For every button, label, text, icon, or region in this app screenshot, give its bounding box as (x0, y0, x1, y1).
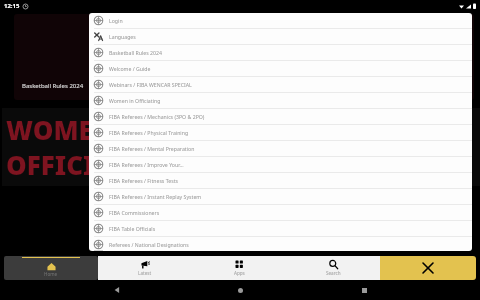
staticText: Basketball Rules 2024 (22, 82, 84, 90)
staticText: Basketball Rules 2024 (109, 49, 162, 56)
staticText: Search (326, 270, 341, 276)
button[interactable]: WOMEN (2, 108, 480, 186)
staticText: FIBA Referees / Physical Training (109, 129, 189, 136)
button[interactable]: Close (380, 256, 476, 280)
staticText: 12:15 (4, 2, 20, 10)
button[interactable]: FIBA Referees / Physical Training (89, 125, 472, 140)
staticText: Login (109, 17, 123, 24)
staticText: FIBA Table Officials (109, 225, 156, 232)
button[interactable]: FIBA Commissioners (89, 205, 472, 220)
button[interactable]: Referees / National Designations (89, 237, 472, 251)
staticText: Languages (109, 33, 136, 40)
button[interactable]: Login (89, 13, 472, 28)
button[interactable]: Languages (89, 29, 472, 44)
staticText: BASK (384, 55, 438, 82)
button[interactable]: Women in Officiating (89, 93, 472, 108)
button[interactable]: FIBA Referees / Improve Your... (89, 157, 472, 172)
button[interactable]: Home (233, 283, 247, 297)
button[interactable]: Basketball Rules 2024 (89, 45, 472, 60)
button[interactable]: O (14, 14, 474, 100)
button[interactable]: Webinars / FIBA WENCAR SPECIAL (89, 77, 472, 92)
staticText: OFFICI (6, 147, 95, 182)
staticText: FIBA Referees / Mechanics (3PO & 2PO) (109, 113, 205, 120)
button[interactable]: Latest (98, 256, 192, 280)
button[interactable]: FIBA Table Officials (89, 221, 472, 236)
staticText: Women in Officiating (109, 97, 161, 104)
staticText: FIBA Commissioners (109, 209, 160, 216)
staticText: Apps (234, 270, 245, 276)
button[interactable]: Home (4, 256, 98, 280)
staticText: O (400, 31, 418, 61)
button[interactable]: Search (286, 256, 380, 280)
staticText: FIBA Referees / Fitness Tests (109, 177, 178, 184)
button[interactable]: FIBA Referees / Mental Preparation (89, 141, 472, 156)
staticText: WOMEN (6, 112, 115, 147)
button[interactable]: FIBA Referees / Instant Replay System (89, 189, 472, 204)
button[interactable]: Back (110, 283, 124, 297)
staticText: FIBA Referees / Improve Your... (109, 161, 184, 168)
button[interactable]: Apps (192, 256, 286, 280)
staticText: Welcome / Guide (109, 65, 151, 72)
button[interactable]: Welcome / Guide (89, 61, 472, 76)
button[interactable]: Recents (357, 283, 371, 297)
staticText: Referees / National Designations (109, 241, 189, 248)
button[interactable]: FIBA Referees / Mechanics (3PO & 2PO) (89, 109, 472, 124)
staticText: FIBA Referees / Mental Preparation (109, 145, 195, 152)
button[interactable]: FIBA Referees / Fitness Tests (89, 173, 472, 188)
staticText: Latest (138, 270, 152, 276)
staticText: Webinars / FIBA WENCAR SPECIAL (109, 81, 192, 88)
staticText: Home (44, 271, 58, 277)
staticText: FIBA Referees / Instant Replay System (109, 193, 202, 200)
